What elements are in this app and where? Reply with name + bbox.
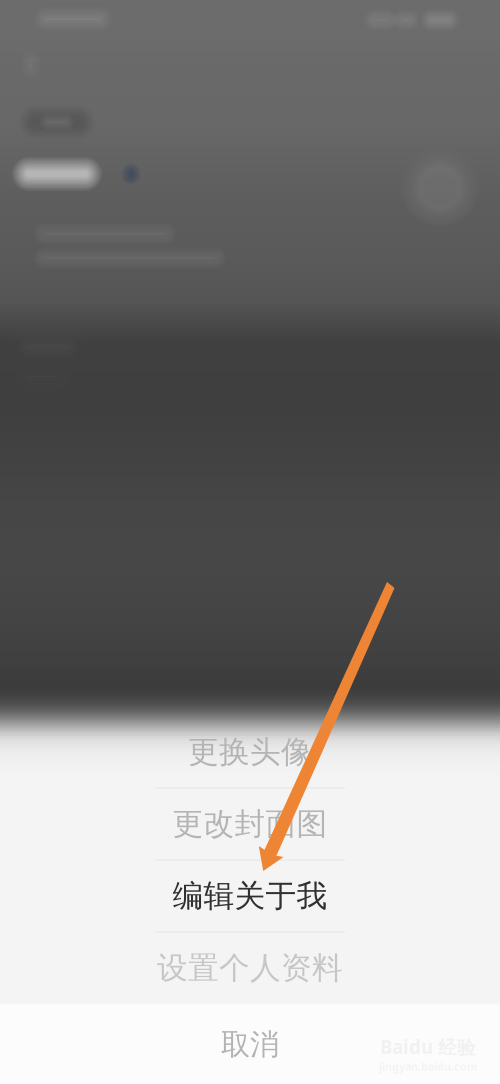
- staticText: 设置个人资料: [157, 949, 343, 987]
- staticText: 编辑关于我: [172, 877, 327, 915]
- staticText: 取消: [221, 1026, 279, 1062]
- button[interactable]: 取消: [0, 1004, 500, 1084]
- button[interactable]: 编辑关于我: [0, 860, 500, 931]
- button[interactable]: 设置个人资料: [0, 932, 500, 1003]
- button[interactable]: 更改封面图: [0, 788, 500, 859]
- staticText: jingyan.baidu.com: [379, 1059, 477, 1074]
- button[interactable]: 更换头像: [0, 716, 500, 787]
- staticText: Baidu 经验: [380, 1034, 476, 1059]
- staticText: 更改封面图: [172, 805, 327, 843]
- staticText: 更换头像: [188, 733, 312, 771]
